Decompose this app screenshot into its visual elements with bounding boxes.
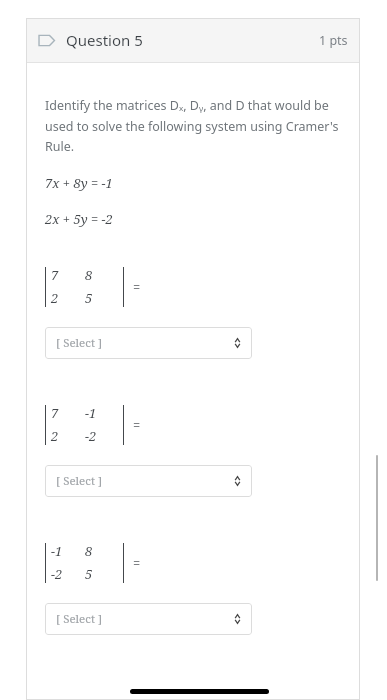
staticText: −1 [85,404,97,422]
staticText: [ Select ] [56,335,103,351]
staticText: 2 [51,289,59,307]
button[interactable]: [ Select ] [45,603,252,635]
staticText: 8 [85,542,93,560]
staticText: −2 [51,565,63,583]
staticText: 2x + 5y = −2 [45,210,113,228]
other: Open dropdown [233,475,242,487]
button[interactable]: [ Select ] [45,327,252,359]
staticText: [ Select ] [56,473,103,489]
staticText: 7 [51,404,59,422]
staticText: 5 [85,565,93,583]
staticText: −1 [51,542,63,560]
staticText: = [133,278,141,296]
staticText: 7 [51,266,59,284]
staticText: [ Select ] [56,611,103,627]
staticText: 8 [85,266,93,284]
staticText: 1 pts [319,32,348,49]
other: Open dropdown [233,337,242,349]
staticText: 7x + 8y = −1 [45,174,113,192]
staticText: = [133,416,141,434]
button[interactable]: Flag question [26,18,360,62]
other: Flag question [38,33,55,48]
staticText: Question 5 [66,30,143,50]
button[interactable]: [ Select ] [45,465,252,497]
staticText: 2 [51,427,59,445]
staticText: 5 [85,289,93,307]
staticText: = [133,554,141,572]
staticText: −2 [85,427,97,445]
other: Open dropdown [233,613,242,625]
staticText: Identify the matrices Dₓ, Dᵧ, and D that… [45,97,345,154]
